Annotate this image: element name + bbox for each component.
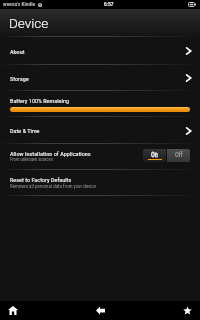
staticText: Device <box>9 15 49 31</box>
staticText: From unknown sources <box>10 157 53 163</box>
button[interactable]: Battery 100% Remaining <box>0 91 200 117</box>
staticText: About <box>10 48 25 55</box>
staticText: On <box>151 151 158 159</box>
staticText: weesa's Kindle <box>3 1 36 8</box>
staticText: Removes all personal data from your devi… <box>10 183 96 189</box>
staticText: Date & Time <box>10 127 40 134</box>
button[interactable]: About <box>0 37 200 65</box>
button[interactable]: Home <box>0 301 40 320</box>
staticText: Battery 100% Remaining <box>10 97 70 104</box>
button[interactable]: Back <box>80 301 120 320</box>
button[interactable]: Favorites <box>160 301 200 320</box>
staticText: Storage <box>10 75 29 82</box>
button[interactable]: Storage <box>0 65 200 91</box>
button[interactable]: Date & Time <box>0 117 200 144</box>
staticText: Off <box>175 151 183 159</box>
staticText: Allow Installation of Applications <box>10 150 91 157</box>
button[interactable]: On <box>143 149 190 162</box>
button[interactable]: Reset to Factory Defaults <box>0 170 200 196</box>
staticText: 6:57 <box>104 1 114 8</box>
staticText: Reset to Factory Defaults <box>10 176 72 183</box>
button[interactable]: Allow Installation of Applications <box>0 144 200 170</box>
